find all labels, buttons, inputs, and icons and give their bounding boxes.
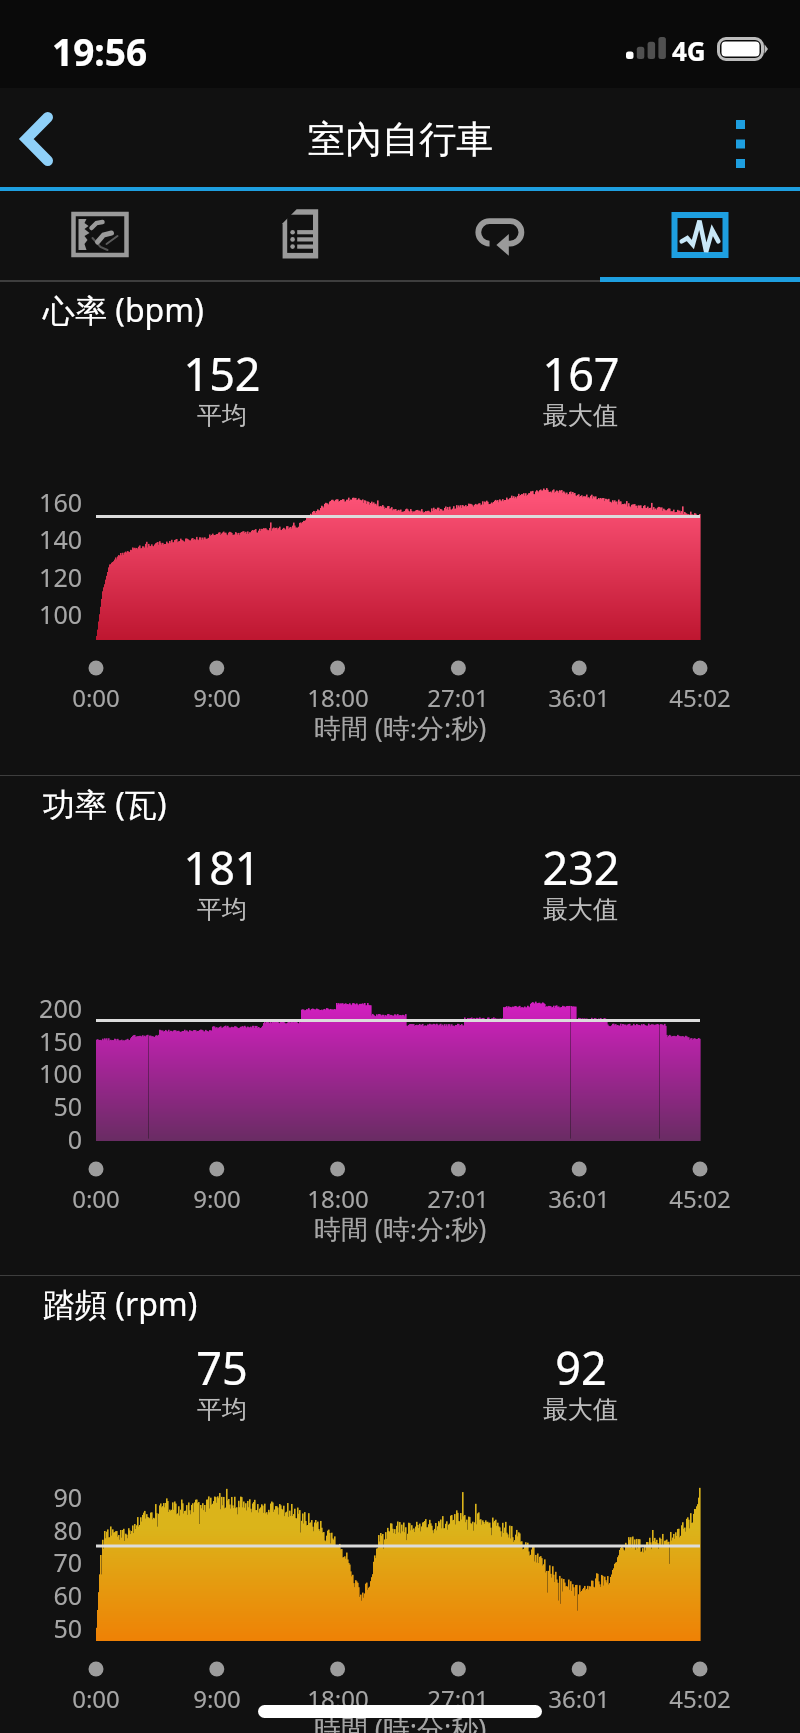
staticText: 0:00 [26,1682,166,1715]
staticText: 時間 (時:分:秒) [0,1710,800,1733]
staticText: 18:00 [268,1182,408,1215]
staticText: 70 [0,1545,82,1579]
staticText: 27:01 [388,681,528,714]
staticText: 100 [0,1056,82,1090]
staticText: 200 [0,991,82,1025]
staticText: 100 [0,597,82,631]
staticText: 時間 (時:分:秒) [0,709,800,746]
button[interactable]: Charts [600,191,800,282]
staticText: 最大值 [543,1394,618,1425]
staticText: 140 [0,522,82,556]
staticText: 0:00 [26,681,166,714]
staticText: 36:01 [509,1682,649,1715]
staticText: 9:00 [147,1182,287,1215]
staticText: 167 [542,343,620,404]
button[interactable]: Back [0,88,96,191]
staticText: 90 [0,1480,82,1514]
staticText: 4G [672,33,706,68]
staticText: 152 [183,343,261,404]
staticText: 160 [0,485,82,519]
button[interactable]: Laps [400,191,600,282]
staticText: 室內自行車 [308,116,493,163]
staticText: 150 [0,1024,82,1058]
staticText: 18:00 [268,1682,408,1715]
staticText: 60 [0,1578,82,1612]
staticText: 120 [0,560,82,594]
button[interactable]: Map [0,191,200,282]
staticText: 心率 (bpm) [43,288,204,332]
staticText: 45:02 [630,1182,770,1215]
staticText: 18:00 [268,681,408,714]
staticText: 45:02 [630,681,770,714]
staticText: 80 [0,1513,82,1547]
staticText: 92 [555,1337,607,1398]
staticText: 9:00 [147,1682,287,1715]
staticText: 0 [0,1122,82,1156]
staticText: 功率 (瓦) [43,782,167,826]
staticText: 0:00 [26,1182,166,1215]
staticText: 踏頻 (rpm) [43,1282,198,1326]
staticText: 平均 [197,1394,247,1425]
staticText: 最大值 [543,400,618,431]
staticText: 36:01 [509,681,649,714]
staticText: 時間 (時:分:秒) [0,1210,800,1247]
staticText: 平均 [197,400,247,431]
staticText: 50 [0,1611,82,1645]
staticText: 232 [542,837,620,898]
staticText: 最大值 [543,894,618,925]
button[interactable]: More options [704,88,800,191]
staticText: 平均 [197,894,247,925]
staticText: 75 [196,1337,248,1398]
button[interactable]: Details [200,191,400,282]
staticText: 50 [0,1089,82,1123]
staticText: 27:01 [388,1182,528,1215]
staticText: 36:01 [509,1182,649,1215]
staticText: 19:56 [52,26,148,76]
staticText: 27:01 [388,1682,528,1715]
staticText: 45:02 [630,1682,770,1715]
staticText: 181 [183,837,261,898]
staticText: 9:00 [147,681,287,714]
